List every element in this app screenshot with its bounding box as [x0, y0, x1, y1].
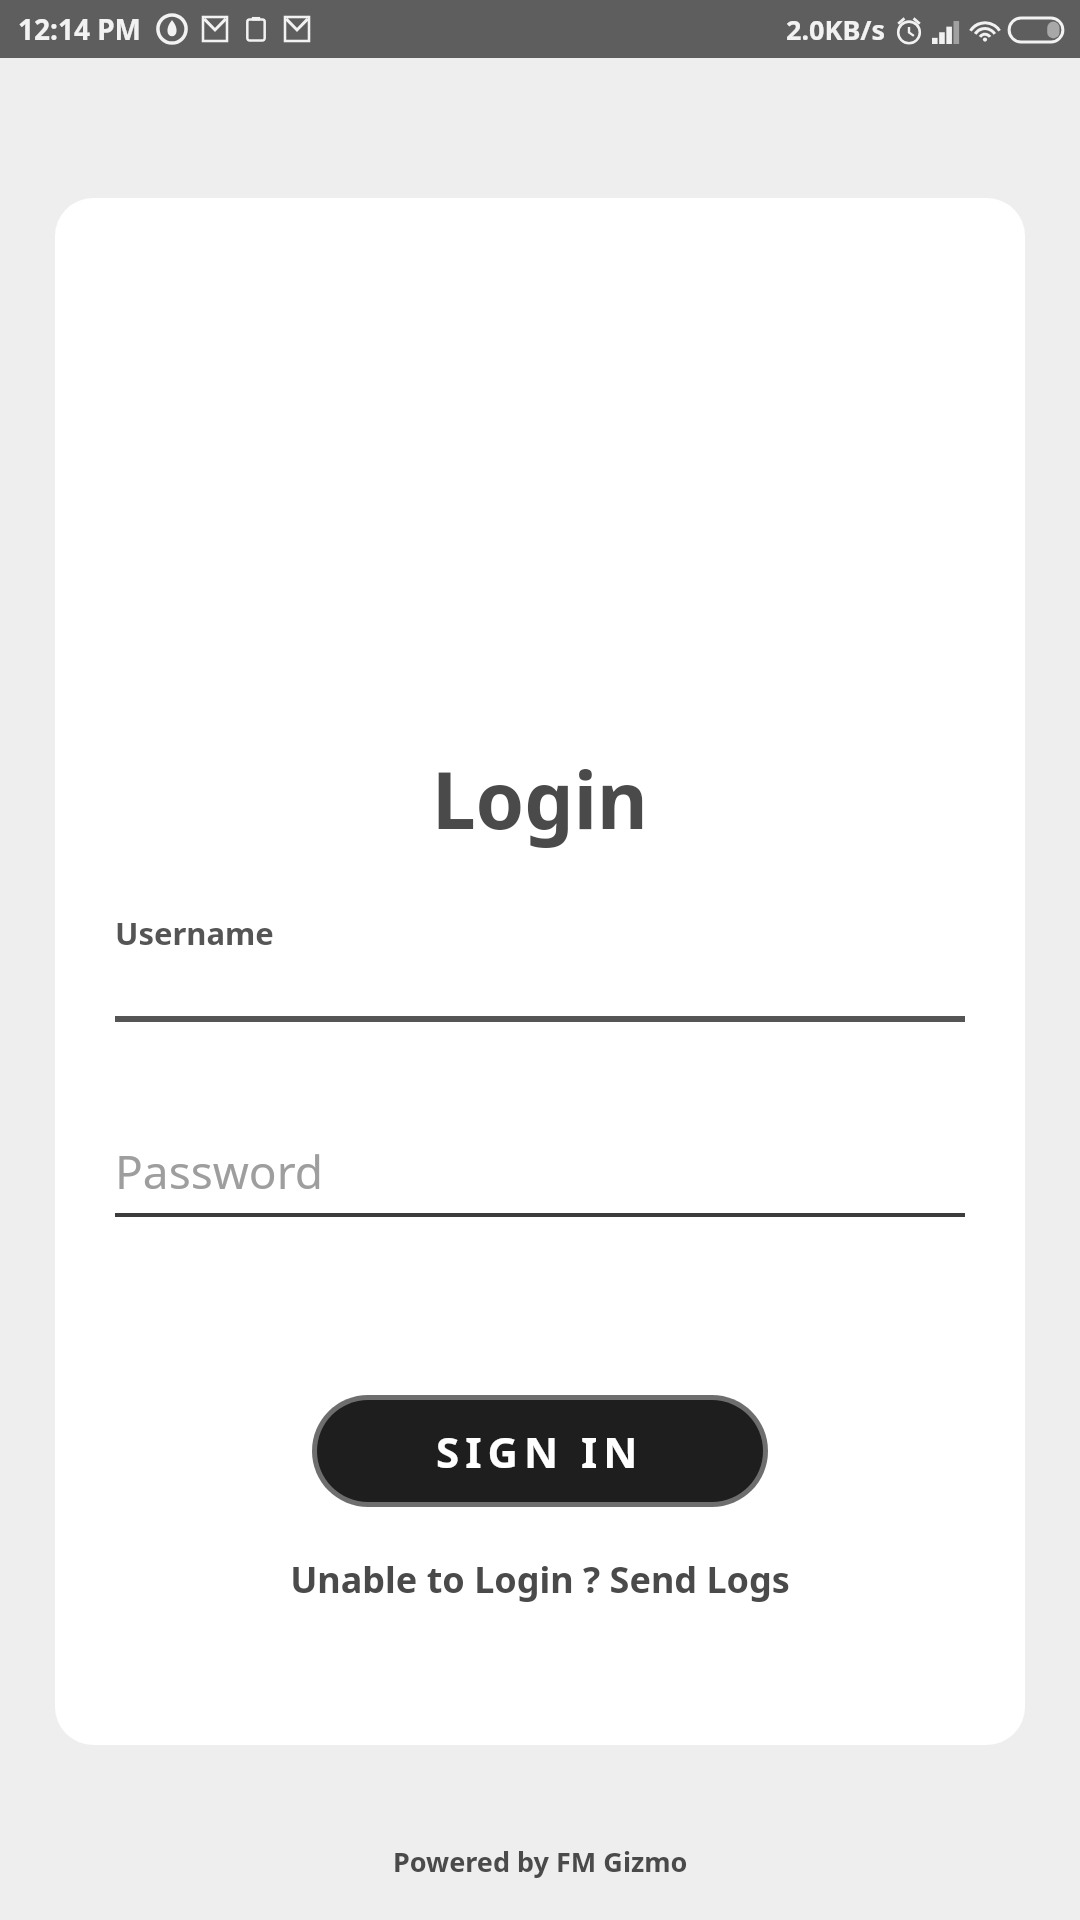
staticText: Unable to Login ? Send Logs: [290, 1555, 790, 1604]
button[interactable]: Unable to Login ? Send Logs: [282, 1549, 798, 1610]
staticText: 2.0KB/s: [786, 11, 886, 48]
button[interactable]: SIGN IN: [317, 1400, 763, 1502]
staticText: 12:14 PM: [18, 10, 142, 48]
staticText: Username: [115, 912, 274, 954]
staticText: Password: [115, 1140, 324, 1203]
button[interactable]: Username: [115, 912, 965, 1022]
staticText: Login: [432, 746, 648, 852]
button[interactable]: Password: [115, 1140, 965, 1217]
staticText: SIGN IN: [436, 1423, 644, 1480]
staticText: Powered by FM Gizmo: [393, 1843, 688, 1880]
